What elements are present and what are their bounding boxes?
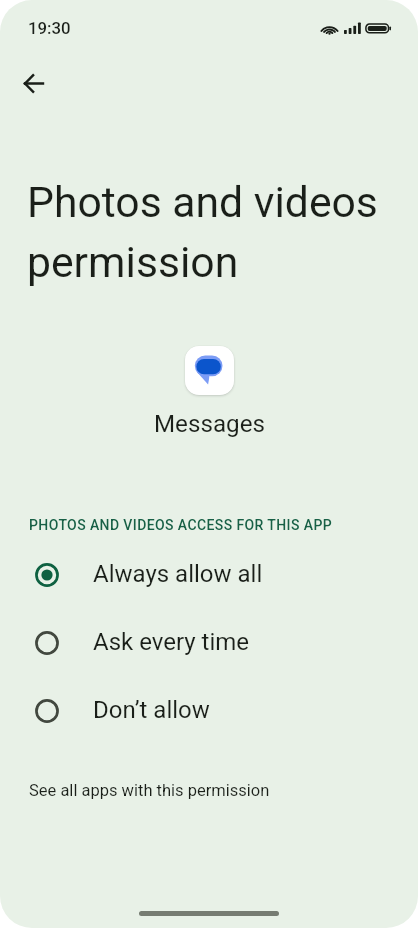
staticText: 19:30: [28, 18, 71, 38]
staticText: PHOTOS AND VIDEOS ACCESS FOR THIS APP: [29, 517, 333, 533]
staticText: Ask every time: [93, 628, 250, 656]
staticText: Always allow all: [93, 560, 263, 588]
staticText: Messages: [154, 410, 265, 438]
button[interactable]: Ask every time: [0, 608, 418, 676]
button[interactable]: Don’t allow: [0, 676, 418, 744]
button[interactable]: See all apps with this permission: [0, 779, 270, 802]
staticText: Photos and videos permission: [27, 177, 378, 288]
button[interactable]: Always allow all: [0, 540, 418, 608]
staticText: Don’t allow: [93, 696, 210, 724]
button[interactable]: Back: [12, 62, 54, 104]
